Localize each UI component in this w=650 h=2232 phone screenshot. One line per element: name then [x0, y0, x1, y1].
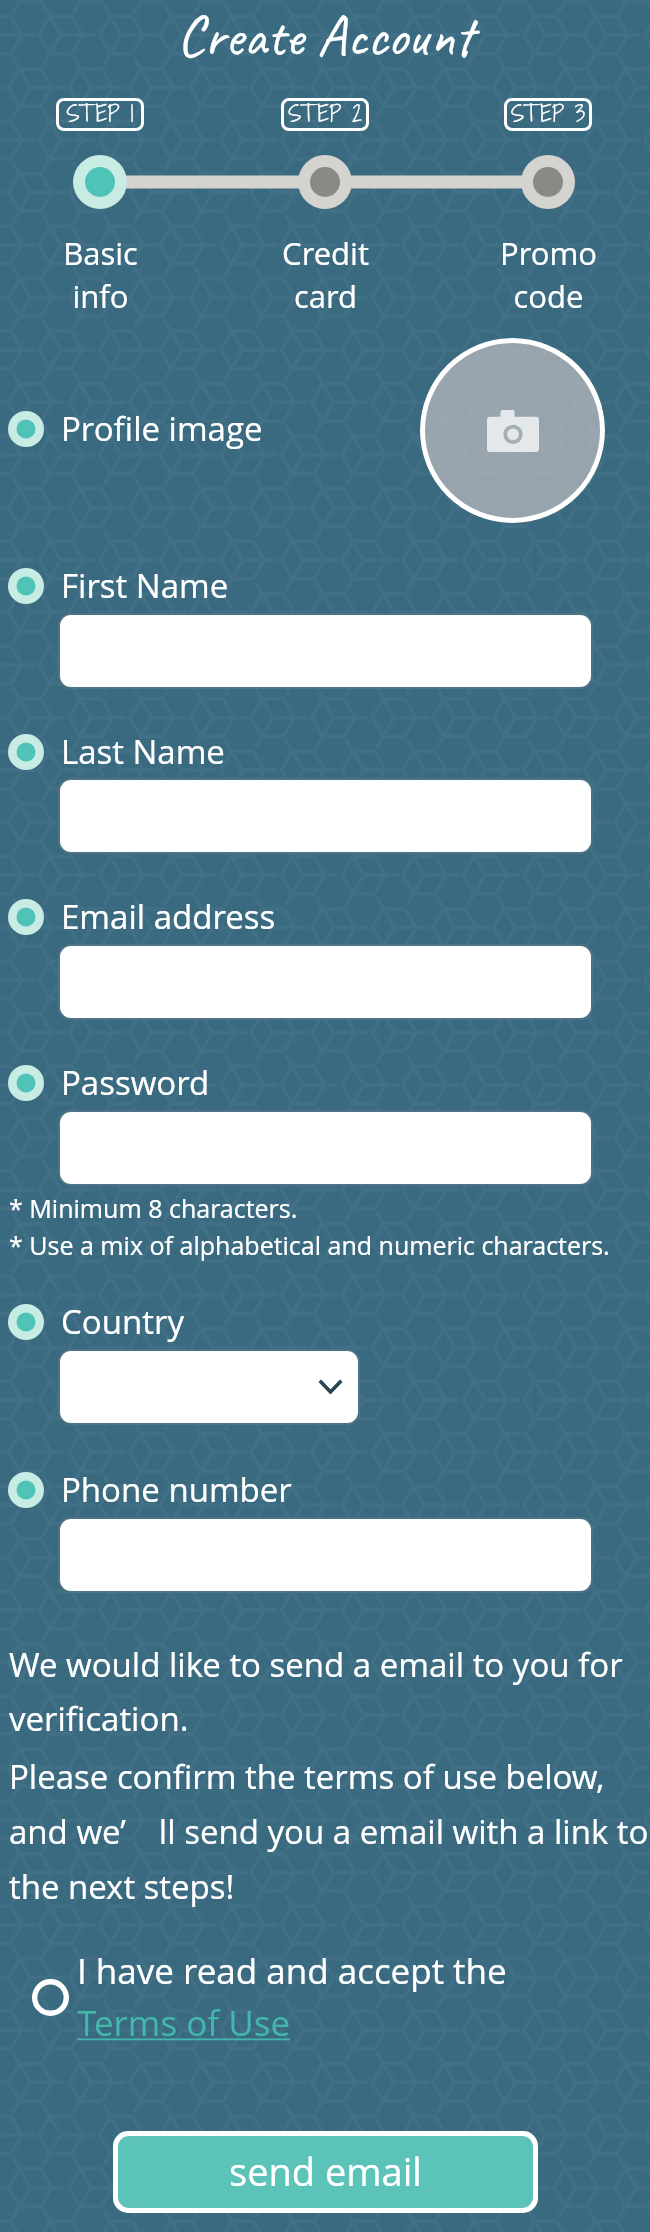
staticText: STEP 3 [448, 97, 648, 129]
staticText: STEP 2 [225, 97, 425, 129]
button[interactable]: STEP 3 [504, 98, 592, 131]
staticText: Create Account [0, 0, 650, 72]
button[interactable]: Country [8, 1299, 185, 1344]
staticText: Phone number [61, 1467, 292, 1512]
button[interactable] [60, 1519, 591, 1591]
staticText: Basic info [63, 232, 138, 317]
button[interactable] [60, 1351, 358, 1423]
button[interactable] [60, 946, 591, 1018]
button[interactable]: STEP 1 [56, 98, 144, 131]
button[interactable]: Phone number [8, 1467, 292, 1512]
staticText: We would like to send a email to you for… [9, 1642, 623, 1740]
button[interactable]: STEP 2 [281, 98, 369, 131]
button[interactable]: First Name [8, 563, 229, 608]
button[interactable]: send email [118, 2136, 533, 2208]
staticText: Password [61, 1060, 210, 1105]
button[interactable]: Profile image [8, 406, 263, 451]
button[interactable]: Email address [8, 894, 276, 939]
staticText: send email [229, 2145, 422, 2197]
staticText: Promo code [500, 232, 597, 317]
staticText: STEP 1 [0, 97, 200, 129]
button[interactable] [60, 1112, 591, 1184]
staticText: Profile image [61, 406, 263, 451]
button[interactable]: Add profile photo [420, 338, 605, 523]
staticText: Please confirm the terms of use below, a… [9, 1754, 649, 1909]
staticText: I have read and accept the [77, 1947, 507, 1995]
staticText: Country [61, 1299, 185, 1344]
staticText: First Name [61, 563, 229, 608]
staticText: * Minimum 8 characters. * Use a mix of a… [9, 1191, 610, 1262]
button[interactable]: Password [8, 1060, 210, 1105]
button[interactable]: I have read and accept the [32, 1947, 530, 2047]
staticText: Last Name [61, 729, 225, 774]
button[interactable] [60, 615, 591, 687]
staticText: Credit card [282, 232, 369, 317]
button[interactable]: Last Name [8, 729, 225, 774]
staticText: Terms of Use [77, 1999, 291, 2047]
staticText: Email address [61, 894, 276, 939]
button[interactable] [60, 780, 591, 852]
